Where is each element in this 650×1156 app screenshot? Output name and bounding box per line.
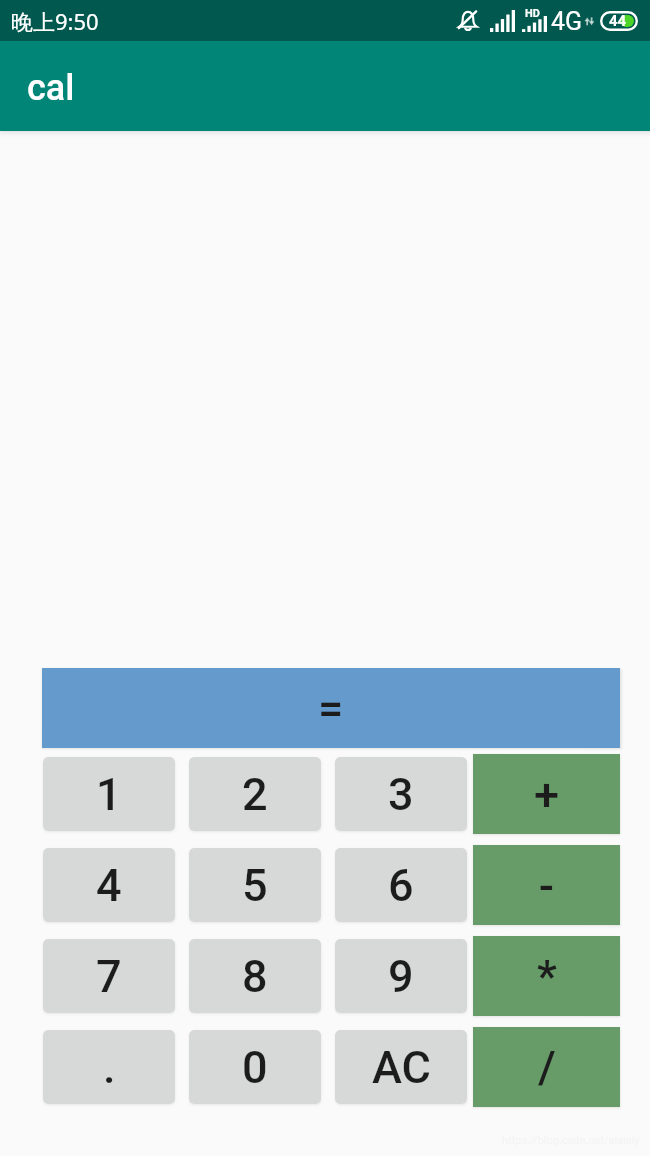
button[interactable]: . [43,1030,175,1104]
staticText: = [318,682,344,735]
button[interactable]: + [473,754,620,834]
staticText: 7 [96,950,122,1003]
button[interactable]: 2 [189,757,321,831]
button[interactable]: 9 [335,939,467,1013]
staticText: * [537,950,557,1003]
other: Silent mode [456,9,480,33]
staticText: - [539,859,554,912]
staticText: 8 [242,950,268,1003]
staticText: 0 [242,1041,268,1094]
staticText: 3 [388,768,414,821]
staticText: / [538,1041,556,1094]
staticText: 6 [388,859,414,912]
button[interactable]: 4 [43,848,175,922]
button[interactable]: 7 [43,939,175,1013]
staticText: cal [27,67,75,109]
staticText: + [534,768,560,821]
button[interactable]: * [473,936,620,1016]
staticText: 44 [609,12,627,30]
button[interactable]: 0 [189,1030,321,1104]
staticText: 4 [96,859,122,912]
staticText: HD [525,7,540,20]
button[interactable]: 1 [43,757,175,831]
staticText: 4G [551,7,583,36]
button[interactable]: / [473,1027,620,1107]
staticText: . [103,1041,116,1094]
staticText: 2 [242,768,268,821]
button[interactable]: - [473,845,620,925]
staticText: AC [372,1041,431,1094]
button[interactable]: 8 [189,939,321,1013]
button[interactable]: 6 [335,848,467,922]
button[interactable]: = [42,668,620,748]
button[interactable]: 5 [189,848,321,922]
button[interactable]: 3 [335,757,467,831]
staticText: 晚上9:50 [11,6,99,36]
button[interactable]: AC [335,1030,467,1104]
staticText: 5 [242,859,268,912]
staticText: 1 [96,768,122,821]
staticText: 9 [388,950,414,1003]
